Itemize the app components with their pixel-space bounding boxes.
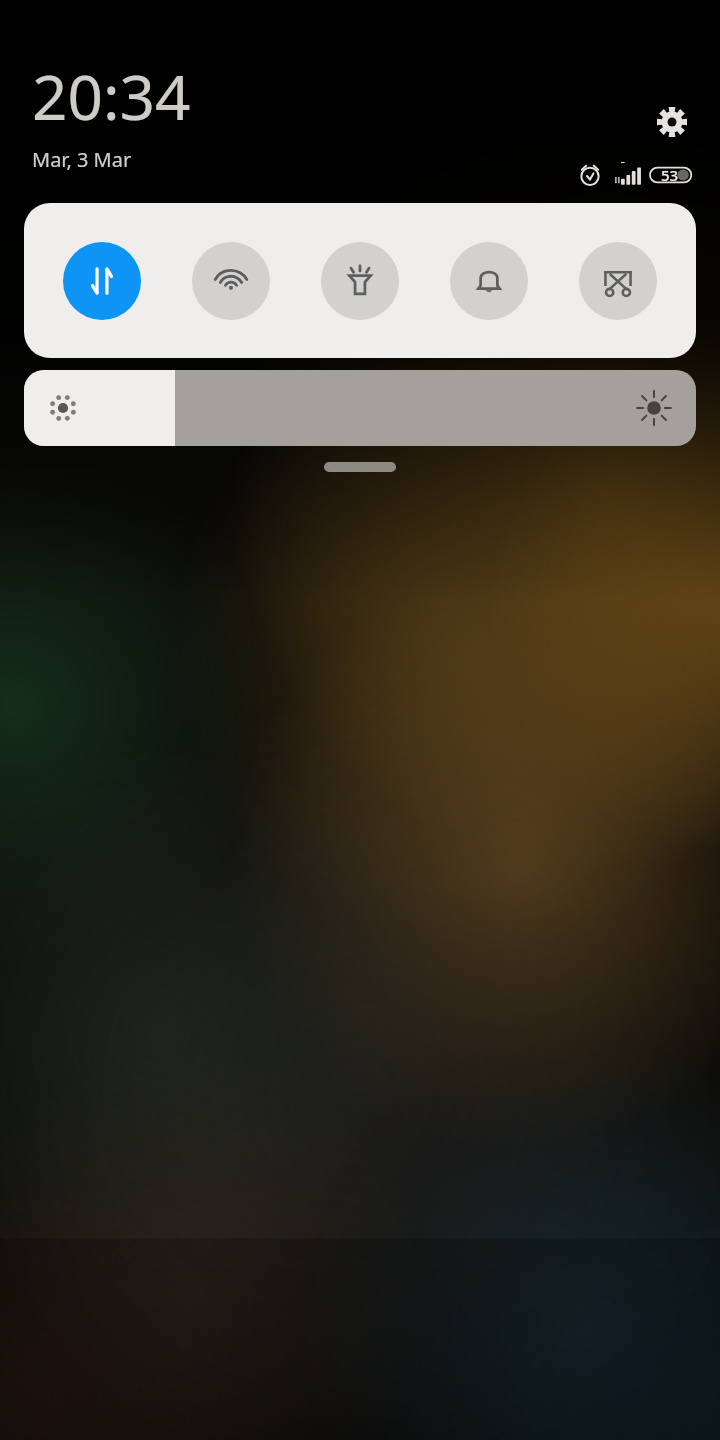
staticText: 20:34 <box>32 54 191 138</box>
button[interactable]: Mobile data <box>63 242 141 320</box>
staticText: Mar, 3 Mar <box>32 146 132 173</box>
button[interactable]: Silent mode <box>450 242 528 320</box>
staticText: 53 <box>661 165 679 185</box>
button[interactable]: Brightness <box>24 370 696 446</box>
button[interactable]: Screenshot <box>579 242 657 320</box>
button[interactable]: Wi-Fi <box>192 242 270 320</box>
button[interactable]: Flashlight <box>321 242 399 320</box>
button[interactable]: Settings <box>650 100 694 144</box>
button[interactable]: Expand <box>324 462 396 472</box>
